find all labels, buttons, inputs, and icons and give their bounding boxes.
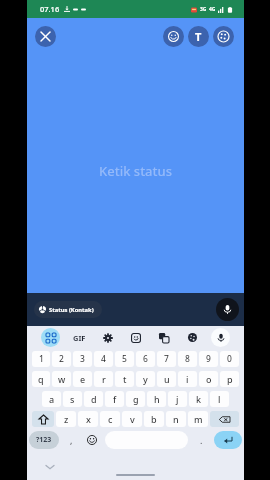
button[interactable]: Theme (183, 328, 202, 347)
button[interactable]: Hide keyboard (46, 463, 54, 471)
button[interactable]: GIF (70, 328, 89, 347)
button[interactable]: , (61, 431, 81, 449)
staticText: k (196, 393, 202, 405)
button[interactable]: 9 (199, 351, 218, 367)
button[interactable]: n (166, 411, 186, 427)
button[interactable]: f (105, 391, 124, 407)
staticText: , (70, 434, 73, 446)
staticText: 4G (209, 6, 216, 13)
button[interactable]: q (32, 371, 50, 387)
staticText: 1 (39, 353, 44, 365)
staticText: 3G (200, 6, 207, 13)
button[interactable]: w (52, 371, 71, 387)
staticText: Ketik status (99, 162, 172, 180)
staticText: b (151, 413, 157, 425)
staticText: ?123 (36, 435, 52, 445)
staticText: f (113, 393, 117, 405)
button[interactable]: Emoji (163, 26, 184, 47)
button[interactable]: t (115, 371, 134, 387)
staticText: 0 (227, 353, 232, 365)
button[interactable]: 0 (220, 351, 239, 367)
staticText: 2 (59, 353, 64, 365)
button[interactable]: c (100, 411, 120, 427)
staticText: i (186, 373, 189, 385)
staticText: w (58, 373, 66, 385)
staticText: s (70, 393, 75, 405)
button[interactable]: i (178, 371, 197, 387)
button[interactable]: Close (35, 26, 56, 47)
staticText: m (194, 413, 203, 425)
staticText: q (38, 373, 44, 385)
staticText: GIF (73, 333, 86, 343)
button[interactable]: Status (Kontak) (34, 301, 102, 318)
button[interactable]: m (188, 411, 208, 427)
button[interactable]: 6 (136, 351, 155, 367)
button[interactable]: 2 (52, 351, 71, 367)
button[interactable]: Space (105, 431, 188, 449)
button[interactable]: p (220, 371, 239, 387)
staticText: y (143, 373, 148, 385)
button[interactable]: h (147, 391, 166, 407)
button[interactable]: 3 (73, 351, 92, 367)
button[interactable]: Voice input (211, 328, 230, 347)
button[interactable]: Palette (213, 26, 234, 47)
button[interactable]: r (94, 371, 113, 387)
staticText: t (123, 373, 127, 385)
button[interactable]: u (157, 371, 176, 387)
staticText: v (130, 413, 135, 425)
button[interactable]: 7 (157, 351, 176, 367)
button[interactable]: b (144, 411, 164, 427)
staticText: z (64, 413, 69, 425)
button[interactable]: y (136, 371, 155, 387)
staticText: l (218, 393, 221, 405)
staticText: e (80, 373, 86, 385)
staticText: a (49, 393, 55, 405)
button[interactable]: Enter (214, 431, 242, 449)
staticText: 9 (206, 353, 211, 365)
staticText: g (133, 393, 139, 405)
button[interactable]: 4 (94, 351, 113, 367)
staticText: 07.16 (40, 4, 60, 14)
staticText: u (164, 373, 170, 385)
button[interactable]: j (168, 391, 187, 407)
button[interactable]: 5 (115, 351, 134, 367)
staticText: 5 (122, 353, 127, 365)
button[interactable]: l (210, 391, 229, 407)
button[interactable]: Apps (41, 328, 60, 347)
staticText: c (108, 413, 113, 425)
button[interactable]: x (78, 411, 98, 427)
staticText: r (102, 373, 106, 385)
button[interactable]: . (190, 431, 212, 449)
button[interactable]: Translate (154, 328, 173, 347)
staticText: n (173, 413, 179, 425)
staticText: 6 (143, 353, 148, 365)
button[interactable]: Shift (32, 411, 54, 427)
staticText: 7 (164, 353, 169, 365)
button[interactable]: s (63, 391, 82, 407)
staticText: x (86, 413, 91, 425)
staticText: d (91, 393, 97, 405)
button[interactable]: o (199, 371, 218, 387)
button[interactable]: g (126, 391, 145, 407)
staticText: 8 (185, 353, 190, 365)
button[interactable]: Emoji (81, 431, 103, 449)
staticText: . (200, 434, 203, 446)
button[interactable]: 8 (178, 351, 197, 367)
button[interactable]: ?123 (29, 431, 59, 449)
staticText: 4 (101, 353, 106, 365)
button[interactable]: Backspace (210, 411, 239, 427)
button[interactable]: Voice note (216, 298, 239, 321)
button[interactable]: 1 (32, 351, 50, 367)
button[interactable]: Stickers (126, 328, 145, 347)
staticText: h (154, 393, 160, 405)
button[interactable]: e (73, 371, 92, 387)
button[interactable]: d (84, 391, 103, 407)
button[interactable]: z (56, 411, 76, 427)
button[interactable]: Settings (98, 328, 117, 347)
staticText: j (176, 393, 179, 405)
button[interactable]: Text (188, 26, 209, 47)
button[interactable]: k (189, 391, 208, 407)
button[interactable]: a (42, 391, 61, 407)
staticText: p (227, 373, 233, 385)
button[interactable]: v (122, 411, 142, 427)
